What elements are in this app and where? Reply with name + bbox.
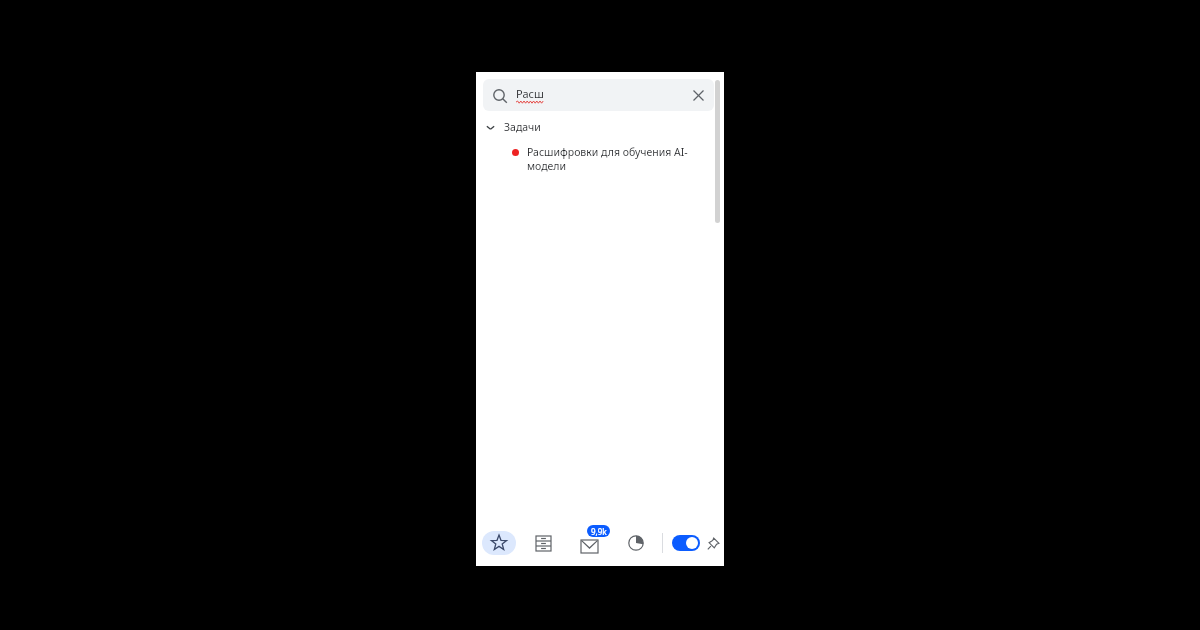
button[interactable]: Clear search: [682, 79, 714, 111]
button[interactable]: Задачи: [476, 117, 724, 137]
button[interactable]: Расш: [483, 79, 714, 111]
button[interactable]: Mail, 9,9k unread: [572, 526, 606, 560]
button[interactable]: Pin: [706, 532, 720, 554]
staticText: 9,9k: [591, 526, 607, 537]
button[interactable]: Statistics: [621, 528, 651, 558]
button[interactable]: Расшифровки для обучения AI-модели: [512, 145, 700, 173]
button[interactable]: Toggle, on: [672, 535, 700, 551]
button[interactable]: Archive: [528, 528, 558, 558]
staticText: Задачи: [504, 120, 541, 134]
staticText: Расш: [516, 86, 544, 101]
button[interactable]: Favorites: [482, 531, 516, 555]
staticText: Расшифровки для обучения AI-модели: [527, 145, 700, 173]
